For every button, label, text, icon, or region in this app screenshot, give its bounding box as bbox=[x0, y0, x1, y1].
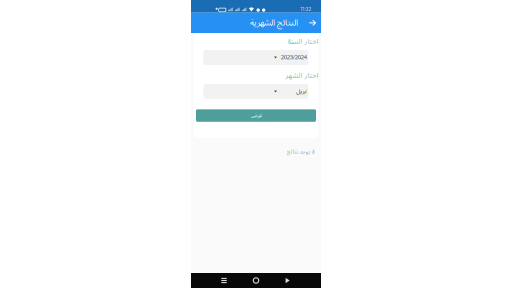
button[interactable]: Home bbox=[245, 273, 267, 288]
button[interactable]: Back bbox=[304, 13, 321, 33]
staticText: لا يوجد نتائج bbox=[286, 145, 314, 158]
staticText: عرض bbox=[250, 110, 262, 121]
staticText: النتائج الشهرية bbox=[249, 14, 297, 32]
staticText: ابريل bbox=[296, 85, 307, 97]
staticText: 2023/2024 bbox=[281, 51, 307, 63]
staticText: اختار السنة bbox=[287, 34, 318, 49]
staticText: اختار الشهر bbox=[285, 68, 318, 83]
button[interactable]: Recent apps bbox=[213, 273, 235, 288]
button[interactable]: 2023/2024 bbox=[203, 50, 308, 65]
button[interactable]: عرض bbox=[196, 109, 316, 122]
button[interactable]: ابريل bbox=[203, 84, 308, 99]
button[interactable]: Back bbox=[277, 273, 299, 288]
staticText: 11:32 bbox=[300, 7, 311, 12]
